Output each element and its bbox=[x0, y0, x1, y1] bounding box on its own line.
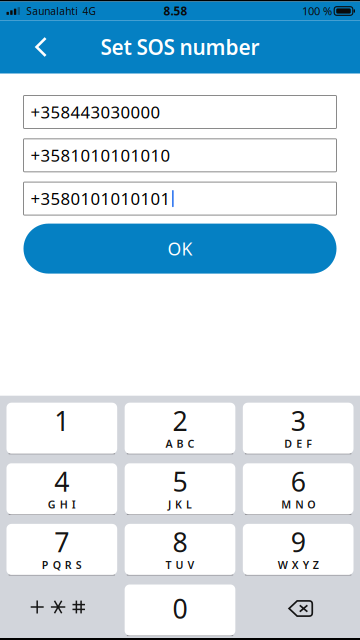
staticText: Set SOS number bbox=[100, 33, 259, 61]
staticText: 2 bbox=[172, 402, 187, 439]
button[interactable]: 9 bbox=[243, 523, 353, 575]
button[interactable]: 8 bbox=[125, 523, 235, 575]
button[interactable]: 7 bbox=[6, 523, 117, 575]
button[interactable]: 3 bbox=[243, 402, 353, 454]
staticText: 1 bbox=[54, 402, 69, 439]
button[interactable]: OK bbox=[23, 224, 336, 274]
staticText: W X Y Z bbox=[278, 558, 319, 572]
button[interactable]: 4 bbox=[6, 463, 117, 515]
staticText: T U V bbox=[165, 558, 194, 572]
staticText: A B C bbox=[165, 436, 194, 451]
staticText: 9 bbox=[291, 524, 306, 560]
button[interactable]: Delete bbox=[243, 584, 353, 636]
staticText: D E F bbox=[284, 436, 312, 451]
staticText: 6 bbox=[291, 463, 306, 499]
staticText: 5 bbox=[172, 463, 187, 499]
staticText: P Q R S bbox=[42, 558, 82, 572]
button[interactable]: 5 bbox=[125, 463, 235, 515]
button[interactable]: 2 bbox=[125, 402, 235, 454]
button[interactable]: 6 bbox=[243, 463, 353, 515]
staticText: 7 bbox=[54, 524, 69, 560]
button[interactable]: 0 bbox=[125, 584, 235, 636]
staticText: 0 bbox=[172, 590, 187, 627]
button[interactable]: Symbols bbox=[6, 584, 117, 636]
button[interactable]: 1 bbox=[6, 402, 117, 454]
staticText: 3 bbox=[291, 402, 306, 439]
staticText: J K L bbox=[168, 497, 192, 511]
staticText: M N O bbox=[281, 497, 315, 511]
staticText: 8 bbox=[172, 524, 187, 560]
staticText: 8.58 bbox=[164, 3, 188, 19]
button[interactable]: Back bbox=[19, 24, 63, 70]
staticText: +3581010101010 bbox=[30, 144, 170, 167]
staticText: 4 bbox=[54, 463, 69, 499]
staticText: +358443030000 bbox=[30, 101, 160, 123]
staticText: 4G bbox=[83, 4, 96, 18]
staticText: G H I bbox=[48, 497, 76, 511]
staticText: 100 % bbox=[302, 3, 332, 19]
staticText: OK bbox=[167, 237, 192, 261]
staticText: Saunalahti bbox=[26, 4, 78, 18]
staticText: +3580101010101 bbox=[30, 187, 170, 210]
